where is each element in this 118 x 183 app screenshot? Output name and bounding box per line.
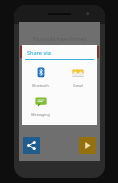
button[interactable]: Play <box>79 137 96 154</box>
button[interactable]: Gmail <box>59 66 97 89</box>
staticText: O <box>48 48 53 56</box>
button[interactable]: O <box>41 46 59 58</box>
staticText: Share via <box>27 49 51 56</box>
button[interactable]: S <box>81 46 99 58</box>
button[interactable]: Messaging <box>22 95 59 118</box>
staticText: Messaging <box>31 112 50 117</box>
staticText: Gmail <box>73 83 83 88</box>
button[interactable]: Bluetooth <box>22 66 59 89</box>
staticText: You could have formed <box>19 36 100 43</box>
button[interactable]: Share <box>23 137 40 154</box>
staticText: Bluetooth <box>32 83 49 88</box>
button[interactable]: L <box>20 46 39 58</box>
staticText: L <box>28 48 32 56</box>
